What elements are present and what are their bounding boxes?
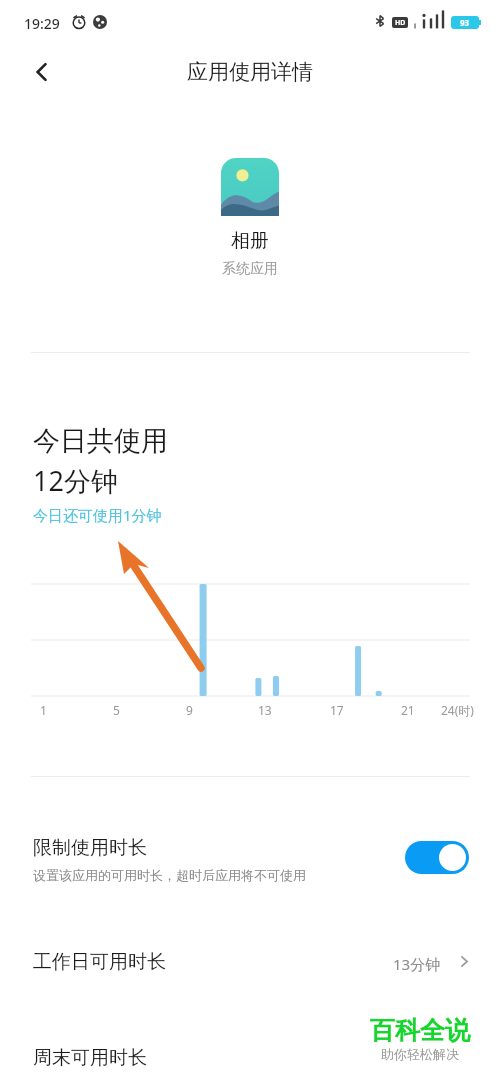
staticText: 限制使用时长	[33, 836, 147, 860]
staticText: 93	[460, 17, 470, 28]
staticText: 17	[330, 702, 344, 718]
staticText: 系统应用	[222, 260, 278, 278]
staticText: 21	[401, 702, 415, 718]
button[interactable]: 工作日可用时长	[0, 930, 500, 996]
staticText: 助你轻松解决	[381, 1046, 459, 1062]
staticText: 13分钟	[393, 954, 441, 974]
button[interactable]: 限制使用时长	[0, 818, 500, 906]
staticText: 设置该应用的可用时长，超时后应用将不可使用	[33, 867, 306, 883]
staticText: 应用使用详情	[187, 59, 313, 85]
staticText: 工作日可用时长	[33, 950, 166, 974]
staticText: 1	[40, 702, 47, 718]
staticText: 周末可用时长	[33, 1046, 147, 1070]
staticText: 相册	[231, 229, 269, 253]
button[interactable]: 限制使用时长开关	[405, 841, 469, 874]
staticText: 百科全说	[370, 1015, 470, 1046]
staticText: 13	[258, 702, 272, 718]
staticText: 5	[113, 702, 120, 718]
button[interactable]: 今日还可使用1分钟	[33, 505, 162, 525]
staticText: 12分钟	[33, 462, 118, 499]
staticText: 24(时)	[441, 702, 474, 718]
staticText: 19:29	[24, 14, 60, 33]
staticText: 今日共使用	[33, 424, 168, 458]
staticText: 9	[186, 702, 193, 718]
button[interactable]: 周末可用时长	[0, 1030, 500, 1084]
staticText: HD	[395, 18, 406, 28]
button[interactable]: Back	[16, 48, 68, 96]
